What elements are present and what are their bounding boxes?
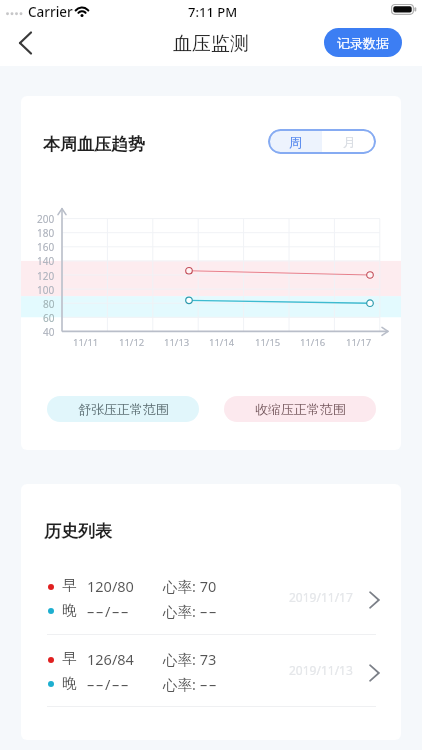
staticText: ––/––: [87, 674, 130, 694]
staticText: 160: [37, 240, 55, 254]
staticText: 11/17: [346, 336, 372, 349]
staticText: 100: [37, 283, 55, 297]
staticText: 晚: [62, 674, 77, 692]
staticText: 120: [37, 269, 55, 283]
staticText: 收缩压正常范围: [255, 401, 346, 417]
staticText: 历史列表: [44, 521, 112, 542]
staticText: 月: [343, 134, 356, 150]
staticText: Carrier: [28, 3, 73, 21]
button[interactable]: 月: [322, 129, 376, 154]
staticText: ––/––: [87, 601, 130, 621]
staticText: 血压监测: [173, 32, 249, 56]
staticText: ––: [200, 674, 218, 694]
staticText: 周: [289, 134, 302, 150]
button[interactable]: 早: [21, 644, 401, 694]
button[interactable]: 记录数据: [324, 28, 402, 57]
staticText: 2019/11/17: [289, 589, 353, 605]
staticText: 40: [43, 325, 55, 339]
staticText: 心率:: [163, 674, 200, 694]
staticText: 心率: 70: [163, 576, 217, 596]
staticText: 140: [37, 254, 55, 268]
staticText: 7:11 PM: [188, 3, 238, 21]
staticText: 200: [37, 212, 55, 226]
staticText: 本周血压趋势: [43, 134, 145, 155]
staticText: 11/16: [300, 336, 326, 349]
button[interactable]: 周: [268, 129, 322, 154]
button[interactable]: Back: [10, 27, 42, 59]
staticText: 11/14: [209, 336, 235, 349]
button[interactable]: 舒张压正常范围: [47, 396, 199, 422]
staticText: 心率:: [163, 601, 200, 621]
staticText: 11/15: [255, 336, 281, 349]
staticText: 晚: [62, 601, 77, 619]
staticText: 126/84: [87, 649, 134, 669]
staticText: 舒张压正常范围: [78, 401, 169, 417]
staticText: ––: [200, 601, 218, 621]
button[interactable]: 早: [21, 571, 401, 621]
staticText: 80: [43, 297, 55, 311]
button[interactable]: 收缩压正常范围: [224, 396, 376, 422]
staticText: 心率: 73: [163, 649, 217, 669]
staticText: 11/11: [73, 336, 99, 349]
staticText: 60: [43, 311, 55, 325]
staticText: 记录数据: [337, 35, 389, 51]
staticText: 11/13: [164, 336, 190, 349]
staticText: 2019/11/13: [289, 662, 353, 678]
staticText: 180: [37, 226, 55, 240]
staticText: 早: [62, 649, 77, 667]
staticText: 120/80: [87, 576, 134, 596]
staticText: 11/12: [119, 336, 145, 349]
staticText: 早: [62, 576, 77, 594]
